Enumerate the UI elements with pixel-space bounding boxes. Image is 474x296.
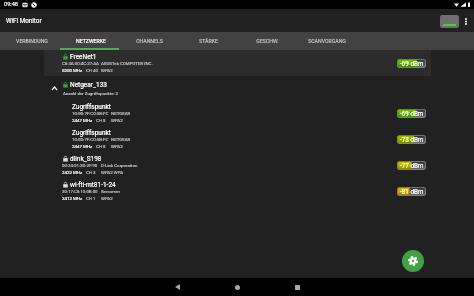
staticText: WPA2 (111, 118, 123, 123)
button[interactable]: dlink_S198 (44, 152, 431, 178)
staticText: CH 3 (86, 170, 96, 175)
button[interactable]: More options (463, 14, 469, 28)
staticText: C8:3A:00:4C:27:AA (62, 61, 99, 66)
staticText: FreeNet1 (70, 53, 97, 61)
staticText: SCANVORGANG (308, 38, 346, 44)
staticText: Sercomm (101, 189, 120, 194)
staticText: WPA2 (111, 144, 123, 149)
staticText: -73 dBm (400, 136, 424, 143)
button[interactable]: STÄRKE (179, 32, 238, 50)
staticText: WPA2 (101, 196, 113, 201)
staticText: Netgear_133 (70, 81, 107, 89)
button[interactable]: VERBINDUNG (2, 32, 61, 50)
staticText: CH 40 (86, 68, 99, 73)
button[interactable]: Zugriffspunkt (44, 100, 431, 126)
staticText: 2447 MHz (72, 118, 93, 123)
button[interactable]: FreeNet1 (44, 50, 431, 76)
button[interactable]: GESCHW. (238, 32, 297, 50)
button[interactable]: CHANNELS (120, 32, 179, 50)
staticText: Zugriffspunkt (72, 103, 111, 111)
staticText: Anzahl der Zugriffspunkte: 2 (63, 91, 119, 96)
staticText: GESCHW. (256, 38, 279, 44)
staticText: WPA2 (101, 68, 113, 73)
staticText: 09:48 (4, 1, 18, 8)
button[interactable]: Signal level (440, 15, 459, 28)
button[interactable]: Zugriffspunkt (44, 126, 431, 152)
staticText: 10:0D:7F:C0:5B:FC (72, 111, 109, 116)
button[interactable]: Home (207, 278, 267, 296)
staticText: WPA2 WPA (101, 170, 124, 175)
staticText: 2422 MHz (62, 170, 83, 175)
staticText: 2447 MHz (72, 144, 93, 149)
staticText: NETZWERKE (76, 38, 106, 44)
staticText: CH 8 (96, 144, 106, 149)
button[interactable]: SCANVORGANG (297, 32, 356, 50)
staticText: D-Link Corporation (101, 163, 138, 168)
button[interactable]: NETZWERKE (61, 32, 120, 50)
staticText: -69 dBm (400, 110, 424, 117)
staticText: CHANNELS (136, 38, 163, 44)
staticText: -81 dBm (400, 188, 424, 195)
staticText: 5200 MHz (62, 68, 83, 73)
staticText: -69 dBm (400, 60, 424, 67)
staticText: 2412 MHz (62, 196, 83, 201)
button[interactable]: Back (147, 278, 207, 296)
staticText: 00:24:01:3D:2F:98 (62, 163, 98, 168)
staticText: Zugriffspunkt (72, 129, 111, 137)
staticText: STÄRKE (199, 38, 218, 44)
staticText: VERBINDUNG (16, 38, 48, 44)
button[interactable]: wi-fti-mt81-1-24 (44, 178, 431, 204)
staticText: NETGEAR (111, 111, 131, 116)
staticText: NETGEAR (111, 137, 131, 142)
staticText: ASUSTek COMPUTER INC. (101, 61, 153, 66)
staticText: 10:0D:7F:C0:5B:FC (72, 137, 109, 142)
staticText: -77 dBm (400, 162, 424, 169)
staticText: wi-fti-mt81-1-24 (70, 181, 116, 189)
staticText: dlink_S198 (70, 155, 102, 163)
staticText: 30:17:C8:13:0B:00 (62, 189, 98, 194)
staticText: WiFi Monitor (6, 17, 42, 24)
staticText: CH 8 (96, 118, 106, 123)
button[interactable]: Recent apps (267, 278, 327, 296)
button[interactable]: Netgear_133 (44, 76, 431, 100)
staticText: CH 1 (86, 196, 96, 201)
button[interactable]: Settings (402, 250, 424, 272)
